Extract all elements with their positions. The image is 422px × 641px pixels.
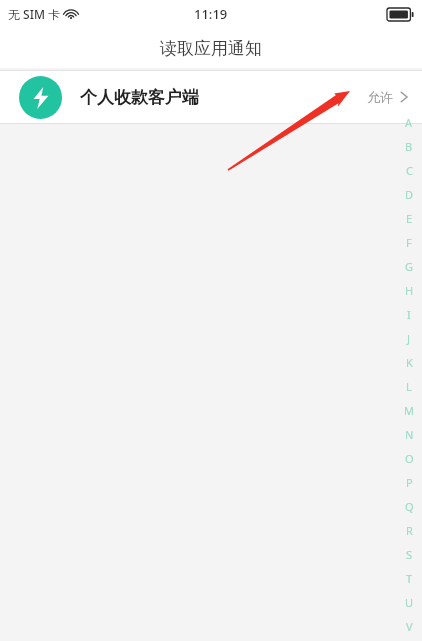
- staticText: C: [406, 163, 413, 178]
- staticText: B: [405, 139, 413, 154]
- staticText: 无 SIM 卡: [8, 6, 61, 22]
- button[interactable]: 个人收款客户端: [0, 71, 422, 123]
- staticText: R: [406, 523, 413, 538]
- staticText: T: [406, 571, 413, 586]
- staticText: 个人收款客户端: [80, 87, 199, 108]
- staticText: O: [405, 451, 414, 466]
- staticText: 11:19: [194, 5, 228, 23]
- staticText: M: [404, 403, 414, 418]
- staticText: J: [407, 331, 411, 346]
- staticText: Q: [405, 499, 414, 514]
- staticText: P: [406, 475, 413, 490]
- staticText: I: [407, 307, 411, 322]
- staticText: K: [406, 355, 413, 370]
- staticText: A: [405, 115, 413, 130]
- staticText: H: [405, 283, 414, 298]
- staticText: G: [405, 259, 414, 274]
- staticText: U: [405, 595, 414, 610]
- staticText: N: [405, 427, 414, 442]
- staticText: 允许: [367, 89, 393, 105]
- staticText: V: [406, 619, 413, 634]
- staticText: F: [406, 235, 412, 250]
- staticText: 读取应用通知: [160, 38, 262, 59]
- staticText: S: [406, 547, 413, 562]
- button[interactable]: Alphabet index: [396, 110, 422, 641]
- staticText: E: [406, 211, 413, 226]
- staticText: D: [405, 187, 414, 202]
- staticText: L: [406, 379, 412, 394]
